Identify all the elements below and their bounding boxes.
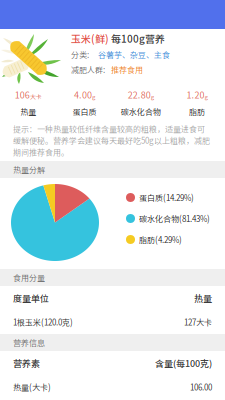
staticText: 106.00 bbox=[190, 381, 212, 393]
staticText: 106 bbox=[15, 88, 30, 101]
staticText: 分类: bbox=[71, 49, 89, 60]
staticText: 脂肪 bbox=[189, 106, 205, 117]
staticText: 热量(大卡) bbox=[13, 381, 51, 393]
staticText: 脂肪(4.29%) bbox=[139, 234, 182, 245]
staticText: 大卡 bbox=[30, 92, 42, 101]
staticText: 4.00 bbox=[74, 88, 92, 101]
staticText: g bbox=[204, 92, 207, 101]
staticText: g bbox=[92, 92, 95, 101]
staticText: 食用分量 bbox=[13, 272, 45, 283]
staticText: 22.80 bbox=[128, 88, 151, 101]
staticText: 热量分解 bbox=[13, 164, 45, 175]
staticText: 热量 bbox=[20, 106, 36, 117]
staticText: 营养信息 bbox=[13, 337, 45, 348]
staticText: g bbox=[151, 92, 154, 101]
staticText: 减肥人群: bbox=[71, 64, 105, 75]
staticText: 1.20 bbox=[186, 88, 204, 101]
staticText: 提示：一种热量较低纤维含量较高的粗粮，适量进食可缓解便秘。营养学会建议每天最好吃… bbox=[13, 123, 210, 158]
staticText: 玉米(鲜) bbox=[71, 31, 109, 46]
staticText: 蛋白质 bbox=[72, 106, 96, 117]
staticText: 热量 bbox=[194, 291, 212, 304]
staticText: 1根玉米(120.0克) bbox=[13, 316, 73, 328]
staticText: 推荐食用 bbox=[111, 64, 143, 75]
staticText: 营养素 bbox=[13, 356, 40, 369]
staticText: 含量(每100克) bbox=[155, 356, 212, 369]
staticText: 蛋白质(14.29%) bbox=[139, 192, 194, 203]
staticText: 127大卡 bbox=[184, 316, 212, 328]
staticText: 每100g营养 bbox=[109, 31, 165, 46]
staticText: 度量单位 bbox=[13, 291, 49, 304]
staticText: 谷薯芋、杂豆、主食 bbox=[98, 49, 170, 60]
staticText: 碳水化合物(81.43%) bbox=[139, 213, 210, 224]
staticText: 碳水化合物 bbox=[121, 106, 161, 117]
